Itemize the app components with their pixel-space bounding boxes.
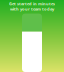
staticText: Get started in minutes — [9, 1, 55, 6]
staticText: with your team today — [10, 6, 54, 12]
